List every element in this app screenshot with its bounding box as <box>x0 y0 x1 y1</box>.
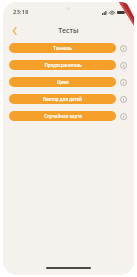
button[interactable]: Предохранитель <box>9 60 116 70</box>
staticText: Случайная карта <box>44 113 82 119</box>
staticText: Предохранитель <box>44 62 82 68</box>
staticText: 23:18 <box>13 8 29 16</box>
button[interactable]: Info about Цикл <box>119 78 128 87</box>
staticText: Вектор для детей <box>43 96 82 102</box>
button[interactable]: Info about Тоннель <box>119 44 128 53</box>
button[interactable]: Info about Предохранитель <box>119 61 128 70</box>
button[interactable]: Info about Случайная карта <box>119 112 128 121</box>
button[interactable]: Тоннель <box>9 43 116 53</box>
button[interactable]: Цикл <box>9 77 116 87</box>
button[interactable]: Info about Вектор для детей <box>119 95 128 104</box>
button[interactable]: Back <box>8 24 22 38</box>
staticText: Цикл <box>57 79 69 85</box>
button[interactable]: Вектор для детей <box>9 94 116 104</box>
button[interactable]: Случайная карта <box>9 111 116 121</box>
staticText: Тесты <box>58 26 79 36</box>
staticText: Тоннель <box>53 45 72 51</box>
